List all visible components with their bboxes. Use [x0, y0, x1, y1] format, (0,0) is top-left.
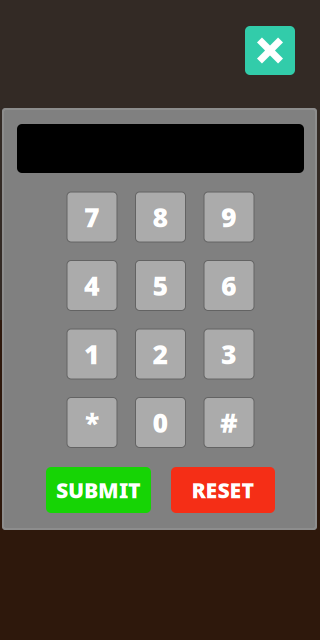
button[interactable]: Close — [245, 26, 295, 75]
staticText: 8 — [152, 199, 168, 235]
button[interactable]: SUBMIT — [46, 467, 151, 513]
staticText: * — [85, 405, 99, 440]
staticText: 4 — [84, 268, 100, 303]
button[interactable]: # — [204, 397, 254, 447]
button[interactable]: 9 — [204, 192, 254, 242]
button[interactable]: 1 — [67, 329, 117, 379]
button[interactable]: 3 — [204, 329, 254, 379]
staticText: 7 — [84, 199, 100, 235]
button[interactable]: 6 — [204, 260, 254, 310]
staticText: SUBMIT — [56, 476, 141, 504]
staticText: 0 — [152, 405, 168, 440]
button[interactable]: 4 — [67, 260, 117, 310]
button[interactable]: * — [67, 397, 117, 447]
button[interactable]: 0 — [135, 397, 185, 447]
staticText: # — [220, 405, 238, 440]
button[interactable]: 8 — [135, 192, 185, 242]
staticText: 9 — [221, 199, 237, 235]
button[interactable]: RESET — [171, 467, 275, 513]
staticText: 3 — [221, 336, 237, 372]
staticText: 5 — [152, 268, 168, 303]
staticText: 6 — [221, 268, 237, 303]
button[interactable]: 2 — [135, 329, 185, 379]
button[interactable]: 7 — [67, 192, 117, 242]
staticText: RESET — [191, 476, 254, 504]
button[interactable]: 5 — [135, 260, 185, 310]
staticText: 1 — [84, 336, 100, 372]
staticText: 2 — [152, 336, 168, 372]
